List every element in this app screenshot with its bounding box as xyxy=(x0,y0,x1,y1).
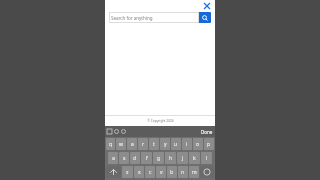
button[interactable]: Backspace xyxy=(200,166,214,178)
button[interactable]: c xyxy=(145,166,155,178)
button[interactable]: f xyxy=(141,152,152,164)
button[interactable]: b xyxy=(167,166,177,178)
button[interactable]: d xyxy=(130,152,140,164)
staticText: p xyxy=(207,141,211,148)
button[interactable]: q xyxy=(106,138,115,150)
staticText: m xyxy=(192,169,197,176)
button[interactable]: Search for anything xyxy=(109,12,199,23)
staticText: d xyxy=(133,155,137,162)
button[interactable]: u xyxy=(171,138,181,150)
button[interactable]: r xyxy=(138,138,148,150)
staticText: n xyxy=(181,169,185,176)
staticText: w xyxy=(119,141,123,148)
button[interactable]: x xyxy=(134,166,144,178)
button[interactable]: g xyxy=(153,152,164,164)
button[interactable]: Done xyxy=(201,129,213,135)
button[interactable]: n xyxy=(178,166,188,178)
button[interactable]: j xyxy=(177,152,188,164)
staticText: h xyxy=(169,155,173,162)
button[interactable]: s xyxy=(119,152,129,164)
staticText: o xyxy=(196,141,200,148)
button[interactable]: t xyxy=(149,138,159,150)
staticText: t xyxy=(153,141,155,148)
button[interactable]: p xyxy=(204,138,214,150)
staticText: k xyxy=(193,155,196,162)
staticText: a xyxy=(112,155,115,162)
button[interactable]: l xyxy=(201,152,212,164)
staticText: b xyxy=(170,169,174,176)
staticText: c xyxy=(149,169,152,176)
staticText: Done xyxy=(201,129,213,135)
staticText: j xyxy=(182,155,184,162)
button[interactable]: Shift xyxy=(106,166,121,178)
staticText: r xyxy=(142,141,145,148)
button[interactable]: m xyxy=(189,166,199,178)
staticText: y xyxy=(164,141,167,148)
button[interactable]: k xyxy=(189,152,200,164)
button[interactable]: z xyxy=(122,166,133,178)
staticText: © Copyright 2024 xyxy=(147,119,174,123)
staticText: i xyxy=(186,141,188,148)
button[interactable]: w xyxy=(116,138,126,150)
button[interactable]: e xyxy=(127,138,137,150)
staticText: l xyxy=(206,155,208,162)
staticText: z xyxy=(126,169,129,176)
button[interactable]: y xyxy=(160,138,170,150)
staticText: u xyxy=(174,141,178,148)
button[interactable]: o xyxy=(193,138,203,150)
button[interactable]: Search xyxy=(199,12,211,23)
button[interactable]: v xyxy=(156,166,166,178)
staticText: f xyxy=(146,155,148,162)
button[interactable]: i xyxy=(182,138,192,150)
staticText: e xyxy=(131,141,134,148)
staticText: g xyxy=(157,155,161,162)
button[interactable]: Close xyxy=(202,1,212,11)
staticText: Search for anything xyxy=(111,15,153,21)
staticText: q xyxy=(109,141,113,148)
button[interactable]: Keyboard tools xyxy=(107,129,126,134)
staticText: s xyxy=(123,155,126,162)
staticText: x xyxy=(138,169,141,176)
button[interactable]: h xyxy=(165,152,176,164)
button[interactable]: a xyxy=(108,152,118,164)
staticText: v xyxy=(160,169,163,176)
